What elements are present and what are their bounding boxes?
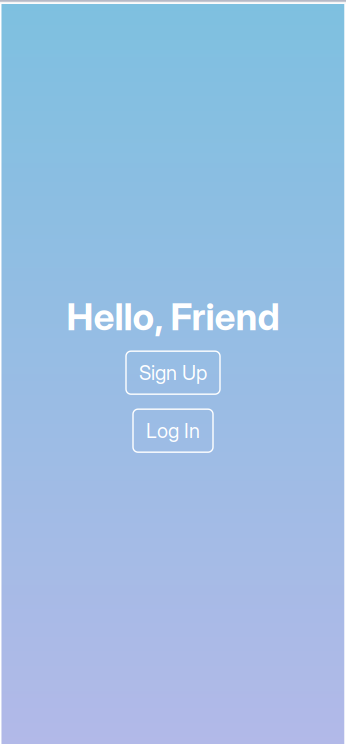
staticText: Hello, Friend [66,294,279,339]
staticText: Sign Up [139,361,207,385]
staticText: Log In [146,419,200,443]
button[interactable]: Sign Up [126,351,220,394]
button[interactable]: Log In [133,409,213,452]
